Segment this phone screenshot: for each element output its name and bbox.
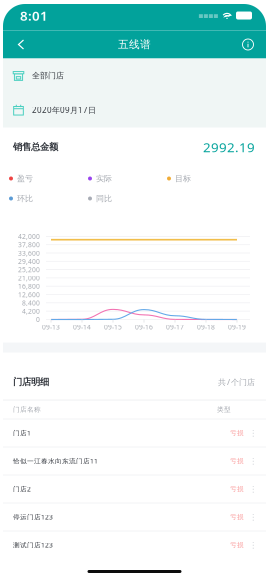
staticText: 亏损	[230, 513, 244, 521]
staticText: 门店名称	[13, 405, 41, 414]
staticText: 亏损	[230, 457, 244, 465]
staticText: 亏损	[230, 485, 244, 493]
staticText: 亏损	[230, 541, 244, 549]
staticText: 门店1	[13, 429, 31, 437]
staticText: 29,400	[18, 257, 40, 266]
button[interactable]: 门店1	[0, 418, 270, 446]
button[interactable]: 停运门店123	[0, 502, 270, 530]
staticText: 恰似一江春水向东流门店11	[13, 457, 98, 465]
button[interactable]: Back	[6, 30, 36, 58]
staticText: 33,600	[18, 249, 40, 257]
staticText: 测试门店123	[13, 541, 53, 549]
staticText: 37,800	[18, 240, 40, 249]
staticText: 42,000	[18, 232, 40, 241]
staticText: ⋮	[249, 456, 257, 466]
staticText: 09-19	[228, 322, 246, 331]
staticText: 8,400	[22, 298, 40, 307]
button[interactable]: 2020年09月17日	[0, 92, 270, 127]
button[interactable]: 全部门店	[0, 58, 270, 92]
staticText: 全部门店	[32, 71, 64, 80]
staticText: 09-18	[197, 322, 215, 331]
button[interactable]: 门店2	[0, 474, 270, 502]
staticText: 0	[36, 315, 40, 324]
staticText: 21,000	[18, 273, 40, 282]
staticText: 8:01	[20, 7, 48, 24]
staticText: 2992.19	[203, 138, 255, 156]
staticText: 09-16	[135, 322, 153, 331]
staticText: 09-13	[42, 322, 60, 331]
staticText: ⋮	[249, 428, 257, 438]
button[interactable]: 恰似一江春水向东流门店11	[0, 446, 270, 474]
button[interactable]: Info	[233, 30, 263, 58]
staticText: 09-14	[73, 322, 91, 331]
staticText: 亏损	[230, 429, 244, 437]
staticText: 09-15	[104, 322, 122, 331]
staticText: 门店明细	[13, 376, 49, 388]
staticText: 门店2	[13, 485, 31, 493]
staticText: 09-17	[166, 322, 184, 331]
staticText: 环比	[17, 194, 33, 203]
staticText: 实际	[96, 174, 112, 183]
staticText: 12,600	[18, 290, 40, 299]
staticText: 共7个门店	[218, 377, 255, 387]
staticText: 同比	[96, 194, 112, 203]
button[interactable]: 测试门店123	[0, 530, 270, 558]
staticText: ⋮	[249, 540, 257, 550]
staticText: 销售总金额	[13, 141, 58, 153]
staticText: ⋮	[249, 484, 257, 494]
staticText: 目标	[175, 174, 191, 183]
staticText: 五线谱	[118, 38, 151, 51]
staticText: ▪▪▪▪	[198, 11, 218, 20]
staticText: 4,200	[22, 307, 40, 316]
staticText: ⋮	[249, 512, 257, 522]
staticText: 盈亏	[17, 174, 33, 183]
staticText: 类型	[217, 405, 231, 414]
staticText: 2020年09月17日	[32, 105, 96, 115]
staticText: 25,200	[18, 265, 40, 274]
staticText: 16,800	[18, 282, 40, 291]
staticText: 停运门店123	[13, 513, 53, 521]
